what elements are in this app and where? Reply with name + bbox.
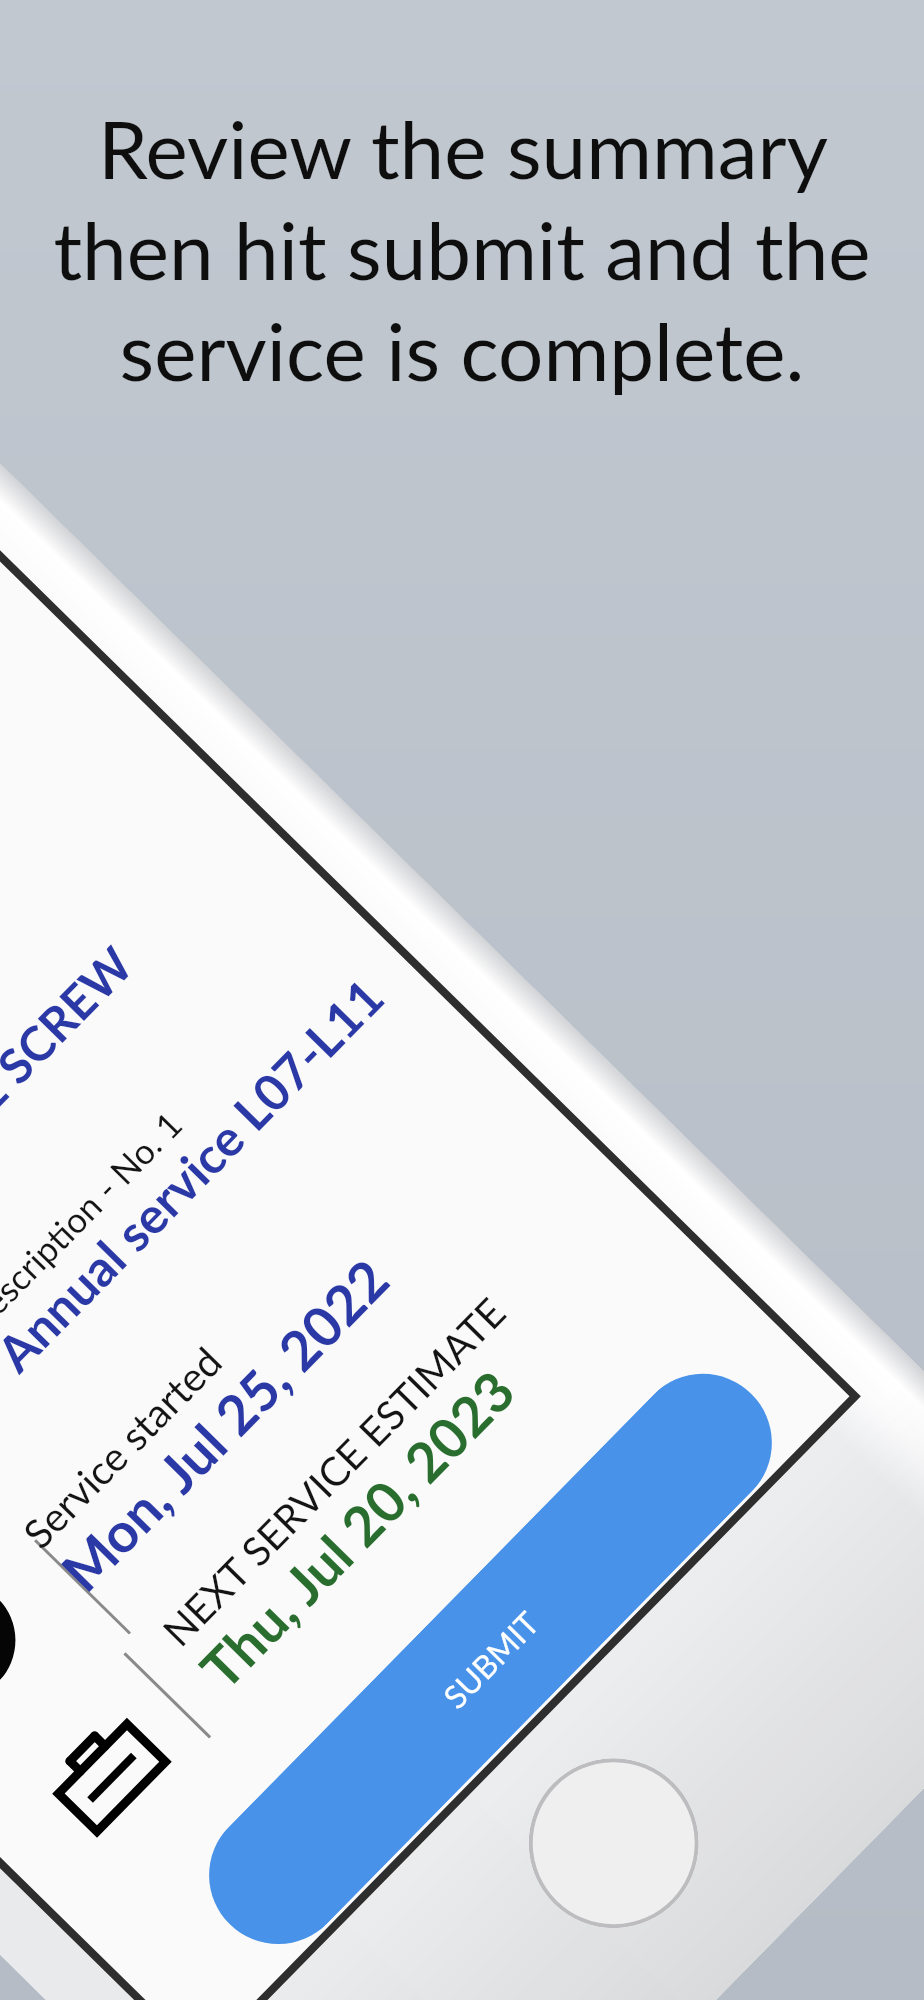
staticText: NEXT SERVICE ESTIMATE [153,1288,515,1655]
staticText: Review the summary then hit submit and t… [36,100,888,398]
staticText: TUBE SCREW [0,935,144,1191]
staticText: Annual service L07-L11 [0,966,395,1383]
button[interactable]: SUBMIT [180,1345,800,1973]
staticText: Description - No. 1 [0,1102,190,1341]
other: Home [493,1723,734,1963]
staticText: Mon, Jul 25, 2022 [48,1246,401,1604]
staticText: SUBMIT [435,1603,546,1715]
staticText: Service started [13,1337,231,1557]
staticText: Thu, Jul 20, 2023 [187,1357,527,1701]
other: Service history [0,1557,40,1724]
